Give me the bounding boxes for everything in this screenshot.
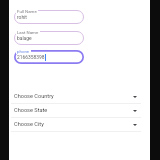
staticText: Choose State [14, 107, 48, 114]
other: Expand [133, 109, 137, 113]
staticText: Choose City [14, 121, 44, 128]
button[interactable]: 2166358398 [14, 50, 84, 64]
staticText: Full Name [17, 9, 37, 14]
button[interactable]: balage [14, 31, 84, 45]
staticText: balage [17, 35, 32, 41]
button[interactable]: Choose Country [9, 90, 150, 104]
staticText: rohit [17, 14, 27, 20]
button[interactable]: rohit [14, 10, 84, 24]
other: Expand [133, 123, 137, 127]
button[interactable]: Choose State [9, 104, 150, 118]
staticText: Choose Country [14, 93, 54, 100]
staticText: 2166358398 [17, 54, 45, 60]
staticText: Last Name [17, 30, 39, 35]
other: Expand [133, 95, 137, 99]
button[interactable]: Choose City [9, 118, 150, 132]
staticText: phone [17, 49, 30, 54]
